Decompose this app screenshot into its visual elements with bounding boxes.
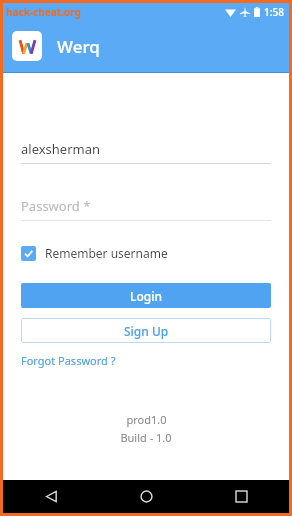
staticText: Remember username xyxy=(45,245,168,261)
staticText: Werq xyxy=(57,35,100,58)
button[interactable]: Password * xyxy=(21,197,271,221)
staticText: alexsherman xyxy=(21,140,101,158)
staticText: Password * xyxy=(21,197,91,215)
button[interactable]: Sign Up xyxy=(21,318,271,343)
button[interactable]: Recent apps xyxy=(194,480,289,513)
staticText: 1:58 xyxy=(264,5,284,19)
button[interactable]: Remember username xyxy=(21,245,168,261)
staticText: Login xyxy=(130,288,162,304)
button[interactable]: Home xyxy=(99,480,194,513)
button[interactable]: Back xyxy=(3,480,99,513)
button[interactable]: alexsherman xyxy=(21,140,271,164)
staticText: hack-cheat.org xyxy=(6,5,81,19)
button[interactable]: Werq logo xyxy=(12,31,42,61)
staticText: prod1.0 xyxy=(126,412,167,427)
staticText: Build - 1.0 xyxy=(120,430,172,445)
staticText: Sign Up xyxy=(124,323,169,339)
button[interactable]: Login xyxy=(21,283,271,308)
button[interactable]: Forgot Password ? xyxy=(21,353,116,368)
staticText: Forgot Password ? xyxy=(21,353,116,368)
